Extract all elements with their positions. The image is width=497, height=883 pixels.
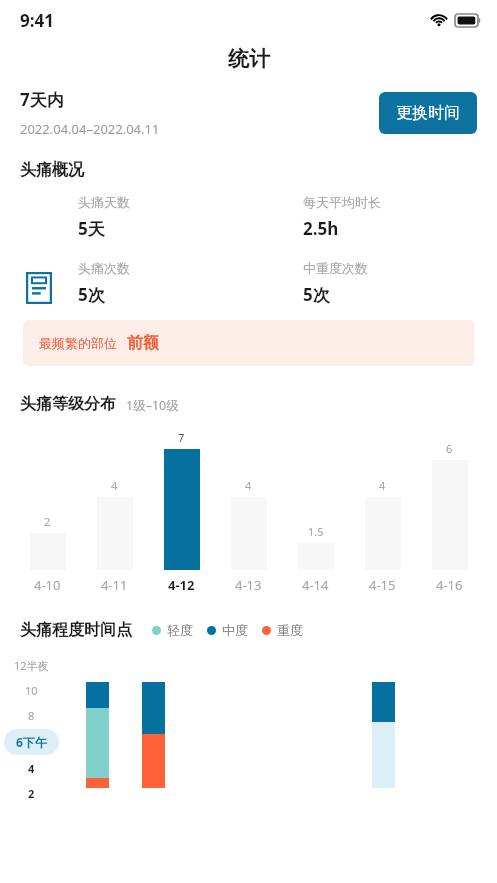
staticText: 头痛程度时间点: [20, 620, 132, 640]
staticText: 4: [245, 478, 252, 493]
staticText: 4-12: [168, 576, 195, 594]
staticText: 12半夜: [14, 658, 49, 673]
staticText: 头痛天数: [78, 194, 130, 210]
staticText: 最频繁的部位: [39, 335, 117, 351]
staticText: 6: [446, 441, 453, 456]
staticText: 4-13: [235, 576, 262, 594]
staticText: 中重度次数: [303, 260, 368, 276]
button[interactable]: 1.5: [282, 524, 349, 570]
staticText: 2022.04.04–2022.04.11: [20, 120, 160, 138]
staticText: 4: [28, 761, 35, 776]
button[interactable]: 更换时间: [379, 92, 477, 134]
staticText: 头痛概况: [20, 160, 84, 180]
staticText: 头痛等级分布: [20, 394, 116, 414]
staticText: 4-10: [34, 576, 61, 594]
staticText: 更换时间: [396, 103, 460, 123]
staticText: 重度: [277, 622, 303, 638]
staticText: 8: [28, 708, 35, 723]
staticText: 9:41: [20, 9, 54, 32]
staticText: 7天内: [20, 88, 64, 111]
button[interactable]: [86, 682, 109, 788]
staticText: 2: [28, 786, 35, 801]
button[interactable]: [142, 682, 165, 788]
staticText: 7: [178, 430, 185, 445]
staticText: 5天: [78, 217, 105, 240]
button[interactable]: 2: [14, 514, 81, 570]
staticText: 4: [111, 478, 118, 493]
staticText: 前额: [127, 333, 159, 353]
staticText: 4-15: [369, 576, 396, 594]
button[interactable]: 4: [81, 478, 148, 570]
staticText: 4-16: [436, 576, 463, 594]
button[interactable]: 7: [148, 430, 215, 570]
staticText: 6下午: [16, 734, 47, 750]
staticText: 轻度: [167, 622, 193, 638]
staticText: 1.5: [308, 524, 324, 539]
staticText: 统计: [228, 46, 270, 72]
staticText: 4-14: [302, 576, 329, 594]
button[interactable]: 6: [416, 441, 483, 570]
button[interactable]: 4: [349, 478, 416, 570]
staticText: 10: [25, 683, 38, 698]
staticText: 中度: [222, 622, 248, 638]
button[interactable]: 最频繁的部位: [23, 320, 474, 366]
staticText: 每天平均时长: [303, 194, 381, 210]
staticText: 4: [379, 478, 386, 493]
staticText: 2: [44, 514, 51, 529]
staticText: 头痛次数: [78, 260, 130, 276]
staticText: 4-11: [101, 576, 128, 594]
staticText: 2.5h: [303, 217, 339, 240]
staticText: 1级–10级: [126, 397, 179, 414]
button[interactable]: 4: [215, 478, 282, 570]
staticText: 5次: [303, 283, 330, 306]
button[interactable]: [372, 682, 395, 788]
staticText: 5次: [78, 283, 105, 306]
